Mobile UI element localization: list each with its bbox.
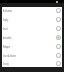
staticText: Notifications (3, 8, 12, 13)
button[interactable]: Security (2, 60, 62, 66)
button[interactable]: Notifications (2, 6, 62, 15)
button[interactable]: Sound (2, 24, 62, 33)
staticText: Sound (3, 26, 8, 31)
button[interactable]: Display (2, 15, 62, 24)
staticText: Security (3, 61, 9, 66)
staticText: Accessibility (3, 35, 12, 40)
button[interactable]: Sound & vibration (2, 51, 62, 60)
button[interactable]: Accessibility (2, 33, 62, 42)
button[interactable]: Wallpaper (2, 42, 62, 51)
staticText: Wallpaper (3, 44, 10, 49)
staticText: Sound & vibration (3, 53, 16, 58)
staticText: Display (3, 17, 8, 22)
